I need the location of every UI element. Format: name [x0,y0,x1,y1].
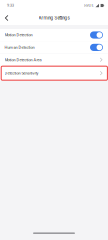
staticText: 9:33 [7,3,14,8]
button[interactable]: Motion Detection [0,29,108,41]
staticText: Motion Detection Area [4,57,41,62]
button[interactable]: Motion Detection Area [0,54,108,66]
staticText: Motion Detection [4,33,32,37]
button[interactable]: Detection Sensitivity [0,66,108,80]
staticText: Detection Sensitivity [4,71,38,76]
staticText: Arming Settings [38,15,69,21]
button[interactable]: Human Detection [0,41,108,53]
button[interactable]: Back [0,11,13,25]
staticText: Human Detection [4,45,34,50]
staticText: 5G/LTE [84,4,94,7]
